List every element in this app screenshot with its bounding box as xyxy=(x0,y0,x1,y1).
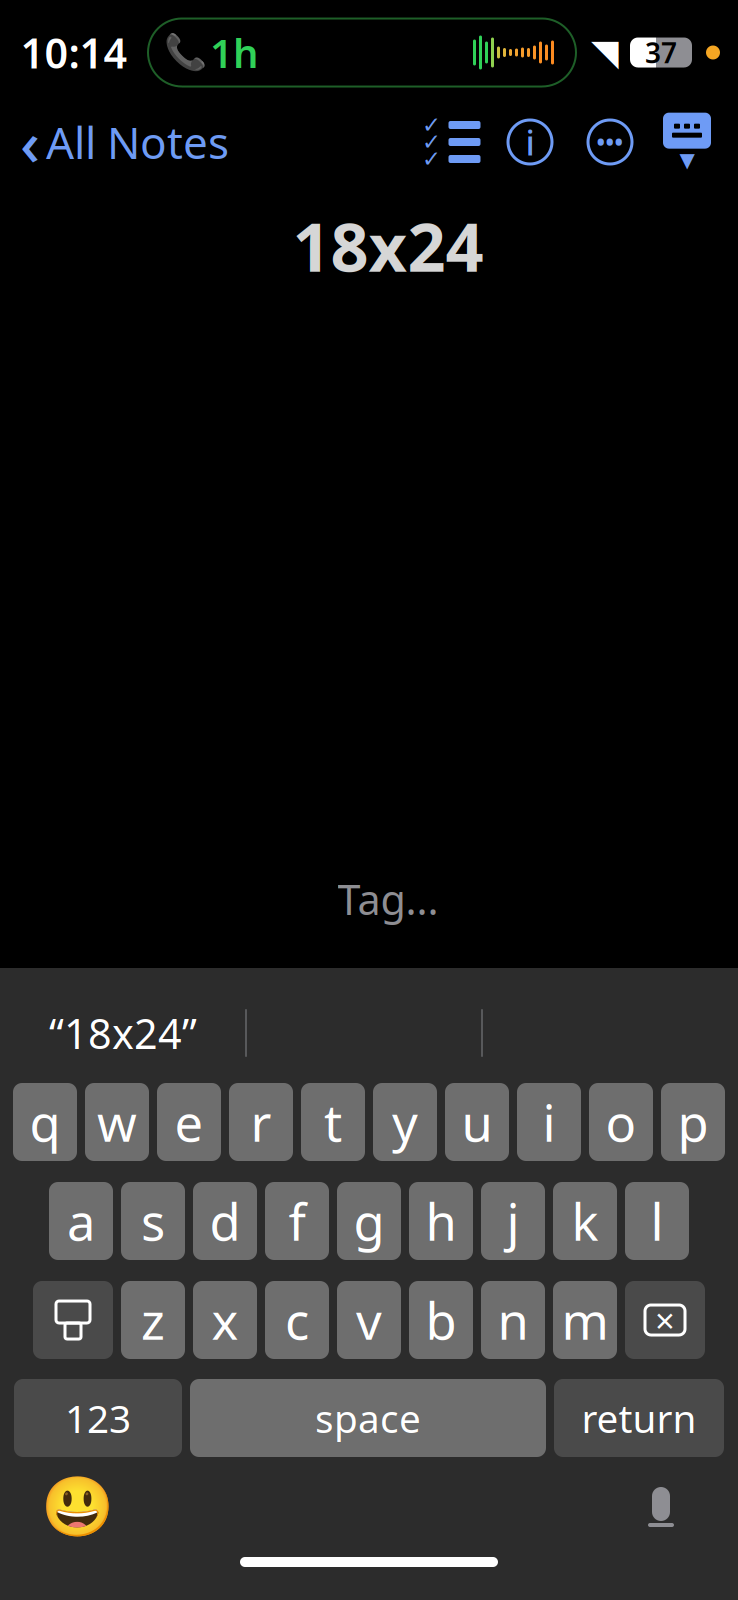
staticText: a xyxy=(67,1187,95,1255)
staticText: n xyxy=(497,1286,528,1354)
staticText: 37 xyxy=(645,34,677,71)
staticText: t xyxy=(324,1088,342,1156)
button[interactable]: t xyxy=(301,1083,365,1161)
button[interactable]: m xyxy=(553,1281,617,1359)
staticText: “18x24” xyxy=(49,1006,197,1060)
button[interactable]: p xyxy=(661,1083,725,1161)
staticText: q xyxy=(29,1088,60,1156)
button[interactable]: g xyxy=(337,1182,401,1260)
button[interactable]: space xyxy=(190,1379,546,1457)
staticText: m xyxy=(561,1286,608,1354)
staticText: 123 xyxy=(65,1392,131,1444)
staticText: x xyxy=(211,1286,238,1354)
button[interactable]: d xyxy=(193,1182,257,1260)
button[interactable]: n xyxy=(481,1281,545,1359)
staticText: ▼ xyxy=(679,149,694,171)
staticText: return xyxy=(581,1392,696,1444)
staticText: 18x24 xyxy=(292,202,483,290)
button[interactable]: c xyxy=(265,1281,329,1359)
button[interactable]: Emoji xyxy=(34,1464,120,1550)
button[interactable]: w xyxy=(85,1083,149,1161)
staticText: 📞 xyxy=(163,33,206,72)
staticText: 1h xyxy=(210,26,259,79)
staticText: × xyxy=(655,1297,675,1343)
staticText: o xyxy=(605,1088,636,1156)
button[interactable]: b xyxy=(409,1281,473,1359)
staticText: ✓ xyxy=(422,129,441,155)
staticText: k xyxy=(571,1187,598,1255)
staticText: ✓ xyxy=(422,146,441,172)
button[interactable]: i xyxy=(517,1083,581,1161)
staticText: j xyxy=(506,1187,519,1255)
button[interactable]: More xyxy=(570,107,650,177)
staticText: h xyxy=(425,1187,456,1255)
button[interactable]: u xyxy=(445,1083,509,1161)
staticText: l xyxy=(650,1187,663,1255)
button[interactable]: l xyxy=(625,1182,689,1260)
button[interactable]: Info xyxy=(490,107,570,177)
button[interactable]: a xyxy=(49,1182,113,1260)
staticText: space xyxy=(315,1392,421,1444)
button[interactable]: “18x24” xyxy=(1,994,245,1072)
staticText: i xyxy=(542,1088,555,1156)
staticText: 😃 xyxy=(40,1473,113,1540)
staticText: r xyxy=(250,1088,271,1156)
button[interactable]: z xyxy=(121,1281,185,1359)
button[interactable]: Delete xyxy=(625,1281,705,1359)
button[interactable]: ‹ xyxy=(0,107,229,177)
staticText: Tag... xyxy=(337,872,438,926)
button[interactable]: r xyxy=(229,1083,293,1161)
button[interactable]: return xyxy=(554,1379,724,1457)
staticText: c xyxy=(285,1286,309,1354)
button[interactable]: q xyxy=(13,1083,77,1161)
button[interactable]: k xyxy=(553,1182,617,1260)
button[interactable]: j xyxy=(481,1182,545,1260)
staticText: y xyxy=(392,1088,418,1156)
staticText: ‹ xyxy=(20,101,40,183)
staticText: ••• xyxy=(596,127,623,157)
button[interactable]: Dictate xyxy=(618,1464,704,1550)
staticText: p xyxy=(677,1088,708,1156)
button[interactable]: h xyxy=(409,1182,473,1260)
staticText: z xyxy=(141,1286,165,1354)
button[interactable]: Checklist xyxy=(414,107,490,177)
button[interactable]: Shift xyxy=(33,1281,113,1359)
button[interactable]: o xyxy=(589,1083,653,1161)
staticText: u xyxy=(461,1088,492,1156)
staticText: s xyxy=(141,1187,165,1255)
staticText: ◥ xyxy=(591,32,619,73)
staticText: All Notes xyxy=(46,113,229,171)
button[interactable]: s xyxy=(121,1182,185,1260)
staticText: i xyxy=(525,119,534,165)
staticText: e xyxy=(174,1088,203,1156)
staticText: f xyxy=(288,1187,305,1255)
button[interactable]: y xyxy=(373,1083,437,1161)
staticText: 10:14 xyxy=(20,25,127,80)
button[interactable]: v xyxy=(337,1281,401,1359)
button[interactable]: 123 xyxy=(14,1379,182,1457)
staticText: v xyxy=(356,1286,382,1354)
staticText: w xyxy=(97,1088,137,1156)
staticText: ✓ xyxy=(422,112,441,138)
button[interactable]: e xyxy=(157,1083,221,1161)
button[interactable]: Hide Keyboard xyxy=(650,107,738,177)
staticText: b xyxy=(425,1286,456,1354)
staticText: g xyxy=(353,1187,384,1255)
button[interactable]: x xyxy=(193,1281,257,1359)
staticText: d xyxy=(209,1187,240,1255)
button[interactable]: f xyxy=(265,1182,329,1260)
